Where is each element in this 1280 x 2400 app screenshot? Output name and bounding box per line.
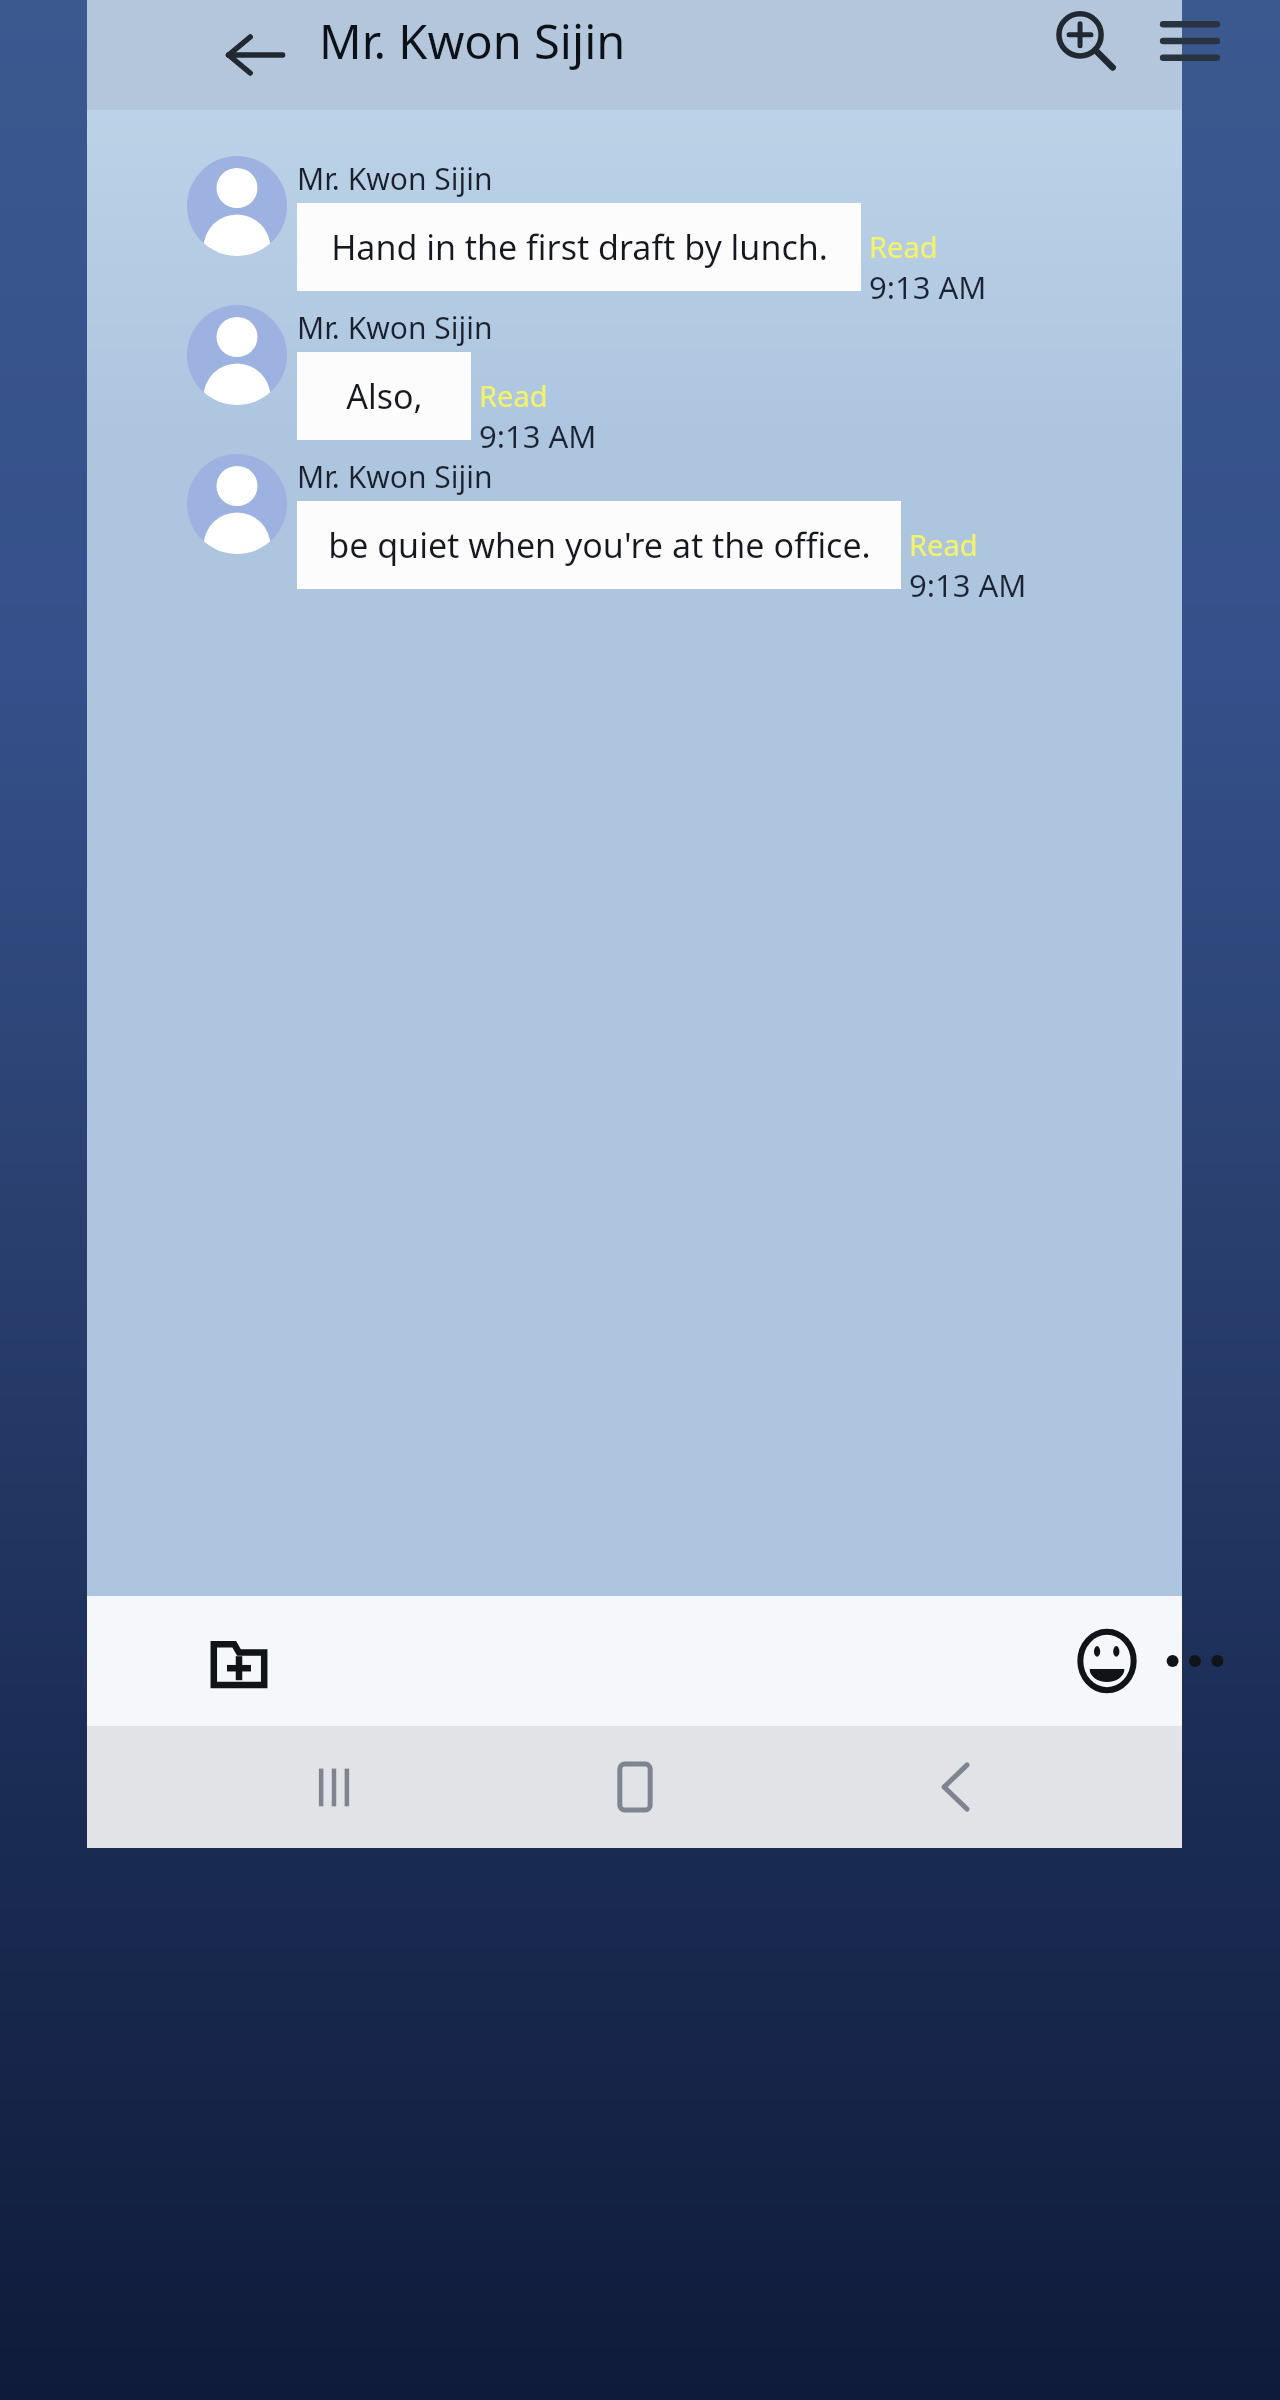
button[interactable]: Back (207, 7, 303, 103)
button[interactable]: Recents (279, 1732, 389, 1842)
staticText: Mr. Kwon Sijin (297, 456, 493, 497)
staticText: Mr. Kwon Sijin (297, 307, 493, 348)
staticText: Read (869, 227, 938, 266)
staticText: Read (479, 376, 548, 415)
button[interactable]: Search (1037, 0, 1133, 89)
button[interactable]: Mr. Kwon Sijin (87, 156, 1182, 291)
staticText: Also, (346, 373, 423, 419)
button[interactable]: More options (1147, 1613, 1243, 1709)
button[interactable]: Back (902, 1732, 1012, 1842)
button[interactable]: Menu (1142, 0, 1238, 89)
staticText: Hand in the first draft by lunch. (331, 224, 828, 270)
button[interactable]: Home (580, 1732, 690, 1842)
staticText: Read (909, 525, 978, 564)
button[interactable]: Mr. Kwon Sijin (87, 454, 1182, 589)
staticText: 9:13 AM (869, 266, 987, 308)
button[interactable]: Attach file (191, 1613, 287, 1709)
staticText: 9:13 AM (909, 564, 1027, 606)
staticText: Mr. Kwon Sijin (319, 9, 626, 73)
staticText: Mr. Kwon Sijin (297, 158, 493, 199)
staticText: be quiet when you're at the office. (328, 522, 871, 568)
staticText: 9:13 AM (479, 415, 597, 457)
button[interactable]: Emoji (1059, 1613, 1155, 1709)
button[interactable]: Mr. Kwon Sijin (87, 305, 1182, 440)
